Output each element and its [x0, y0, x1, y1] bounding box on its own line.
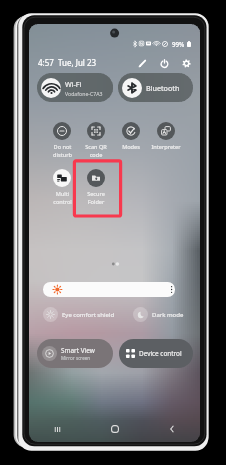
staticText: Vodafone-C7A3: [65, 90, 103, 97]
staticText: Eye comfort shield: [62, 311, 115, 319]
staticText: Dark mode: [152, 311, 184, 319]
button[interactable]: Dark mode: [131, 305, 186, 324]
button[interactable]: Settings: [179, 56, 193, 70]
button[interactable]: Power off: [157, 56, 171, 70]
staticText: Wi-Fi: [65, 79, 82, 89]
staticText: Interpreter: [151, 143, 181, 151]
staticText: Multi control: [53, 190, 72, 205]
button[interactable]: [43, 282, 175, 297]
staticText: Device control: [139, 349, 182, 358]
button[interactable]: Modes: [114, 122, 148, 151]
staticText: 4:57: [38, 57, 54, 68]
button[interactable]: Home: [86, 419, 143, 439]
button[interactable]: Eye comfort shield: [41, 305, 117, 324]
button[interactable]: Smart View: [37, 339, 113, 368]
button[interactable]: Recent apps: [29, 419, 86, 439]
button[interactable]: Multi control: [45, 169, 79, 205]
staticText: Smart View: [61, 346, 95, 355]
button[interactable]: Back: [143, 419, 200, 439]
staticText: Secure Folder: [87, 190, 105, 205]
staticText: Mirror screen: [61, 355, 91, 361]
button[interactable]: Bluetooth: [118, 73, 193, 102]
button[interactable]: Edit: [135, 56, 149, 70]
button[interactable]: Wi-Fi: [37, 73, 113, 102]
button[interactable]: Scan QR code: [79, 122, 113, 158]
staticText: 99%: [172, 40, 185, 48]
staticText: Scan QR code: [85, 143, 107, 158]
button[interactable]: Device control: [119, 339, 193, 368]
button[interactable]: Interpreter: [149, 122, 183, 151]
staticText: Tue, Jul 23: [58, 57, 97, 68]
staticText: Bluetooth: [146, 83, 180, 93]
staticText: Do not disturb: [53, 143, 72, 158]
staticText: Modes: [122, 143, 140, 151]
button[interactable]: Secure Folder: [79, 169, 113, 205]
button[interactable]: Do not disturb: [45, 122, 79, 158]
